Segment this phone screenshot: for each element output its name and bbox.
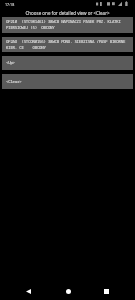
button[interactable]: OF2AO (STCON0156) 38WCB PONO. SIEBZISNA … [2,37,133,52]
staticText: KIER. CE OBCONY [6,45,46,51]
button[interactable]: Home [53,283,83,300]
staticText: <Up> [6,60,15,66]
button[interactable]: <Up> [2,56,133,70]
button[interactable]: Back [13,283,43,300]
button[interactable]: Recents [91,283,121,300]
button[interactable]: <Clear> [2,74,133,89]
staticText: Choose one for detailed view or <Clear> [25,10,110,16]
staticText: OF2AO (STCON0156) 38WCB PONO. SIEBZISNA … [6,39,126,45]
staticText: <Clear> [6,79,22,85]
staticText: 17:18 [5,2,15,7]
staticText: PIERSIOWEJ (5) OBCONY [6,25,55,31]
staticText: OF210 (STC981461) 38WCB NAPINACZI PASEK … [6,19,121,25]
button[interactable]: OF210 (STC981461) 38WCB NAPINACZI PASEK … [2,17,133,33]
